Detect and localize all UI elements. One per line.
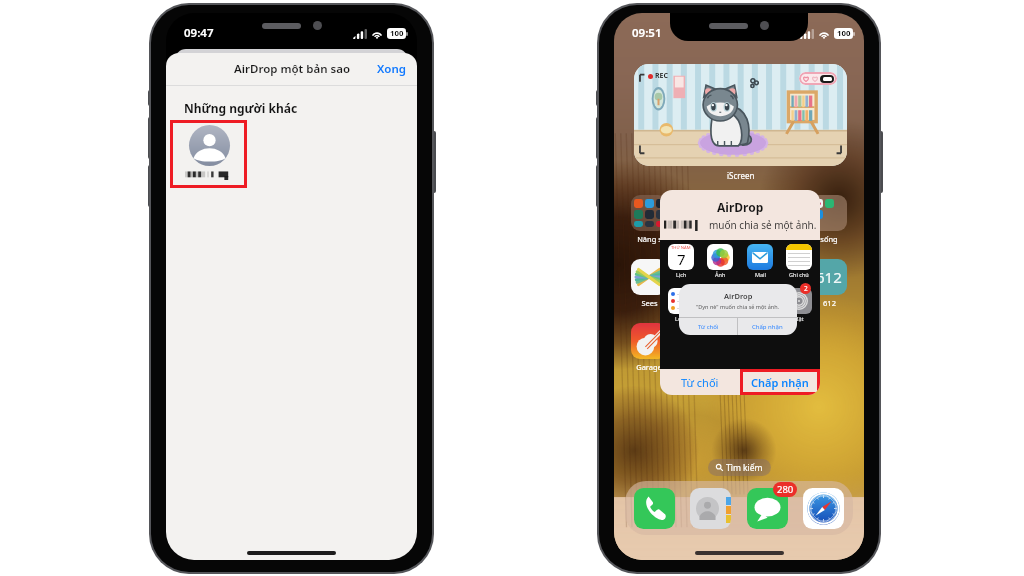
- staticText: AirDrop: [724, 291, 753, 301]
- staticText: REC: [655, 71, 669, 81]
- staticText: Từ chối: [698, 323, 719, 331]
- staticText: Ghi chú: [789, 271, 809, 278]
- staticText: đặt: [795, 315, 804, 322]
- button[interactable]: [751, 323, 787, 359]
- staticText: 100: [837, 28, 851, 39]
- staticText: sống: [820, 234, 838, 244]
- staticText: iScreen: [727, 170, 755, 181]
- button[interactable]: REC: [634, 64, 847, 166]
- staticText: THỨ NĂM: [671, 245, 691, 251]
- button[interactable]: [691, 323, 727, 359]
- staticText: 280: [777, 483, 794, 496]
- button[interactable]: Safari: [803, 488, 844, 529]
- staticText: Từ chối: [681, 375, 719, 390]
- staticText: 612: [823, 298, 836, 308]
- button[interactable]: [751, 259, 787, 295]
- staticText: "Dyn nè" muốn chia sẻ một ảnh.: [696, 303, 780, 310]
- button[interactable]: Phone: [634, 488, 675, 529]
- staticText: Ảnh: [715, 271, 726, 278]
- button[interactable]: [631, 195, 667, 231]
- button[interactable]: Chấp nhận: [740, 369, 820, 395]
- staticText: Tìm kiếm: [726, 462, 763, 474]
- staticText: 2: [804, 284, 808, 293]
- staticText: Năng s: [637, 234, 662, 244]
- button[interactable]: [631, 323, 667, 359]
- staticText: Chấp nhận: [752, 323, 783, 331]
- staticText: 7: [677, 249, 686, 268]
- button[interactable]: [811, 323, 847, 359]
- staticText: Những người khác: [184, 100, 298, 116]
- button[interactable]: 612: [811, 259, 847, 295]
- button[interactable]: [751, 195, 787, 231]
- button[interactable]: Tìm kiếm: [708, 459, 771, 476]
- button[interactable]: [631, 259, 667, 295]
- staticText: Garage: [636, 362, 662, 372]
- staticText: muốn chia sẻ một ảnh.: [709, 218, 816, 232]
- button[interactable]: [691, 259, 727, 295]
- staticText: AirDrop: [717, 199, 764, 215]
- button[interactable]: [170, 120, 247, 188]
- staticText: Lời n: [675, 315, 688, 322]
- staticText: 100: [390, 28, 404, 39]
- button[interactable]: Contacts: [690, 488, 731, 529]
- staticText: 09:47: [184, 25, 214, 41]
- button[interactable]: Từ chối: [660, 369, 740, 395]
- staticText: Sees: [641, 298, 658, 308]
- staticText: AirDrop một bản sao: [234, 61, 350, 77]
- button[interactable]: Xong: [366, 54, 417, 84]
- button[interactable]: Chấp nhận: [738, 318, 797, 335]
- button[interactable]: [811, 195, 847, 231]
- staticText: Xong: [377, 61, 406, 77]
- staticText: Lịch: [676, 271, 687, 278]
- button[interactable]: Messages: [747, 488, 788, 529]
- staticText: Chấp nhận: [751, 375, 809, 390]
- staticText: 09:51: [632, 25, 662, 41]
- button[interactable]: Từ chối: [679, 318, 737, 335]
- staticText: 612: [816, 267, 842, 287]
- button[interactable]: [691, 195, 727, 231]
- staticText: Mail: [755, 271, 766, 278]
